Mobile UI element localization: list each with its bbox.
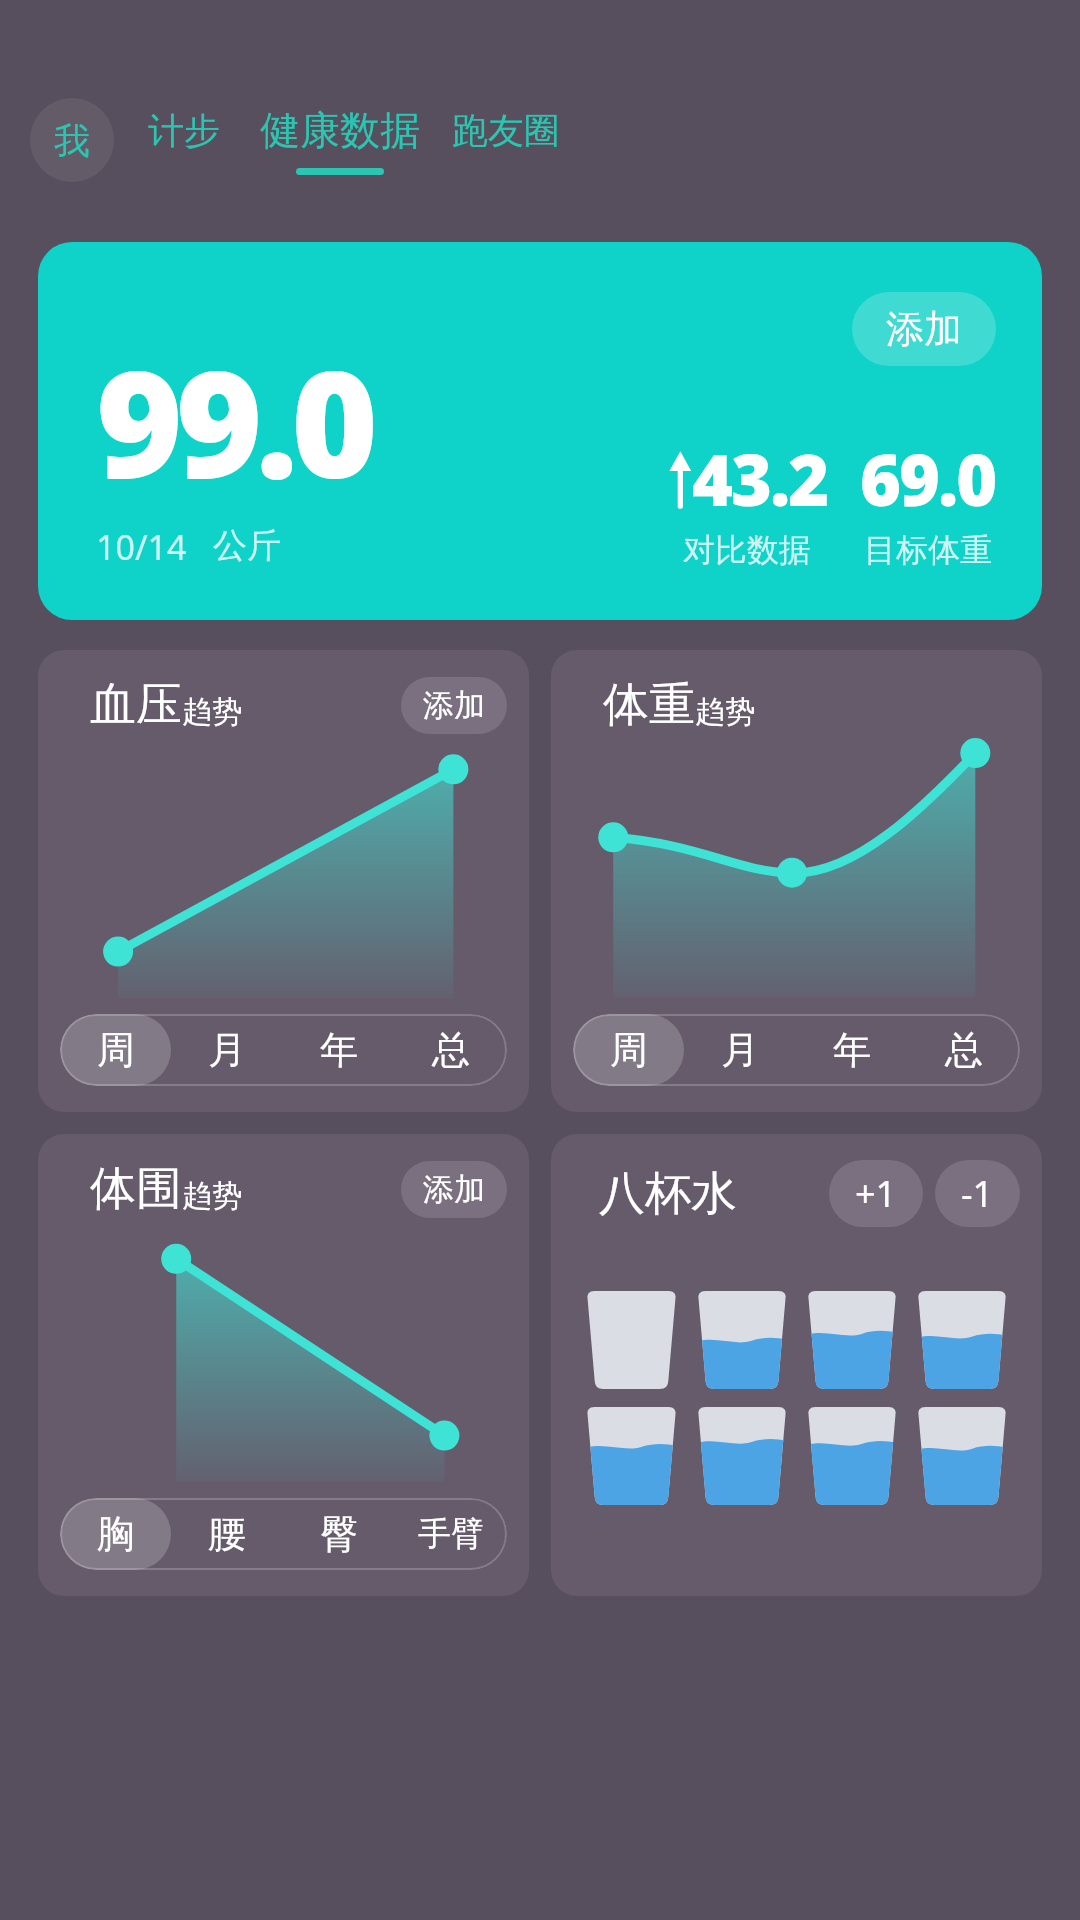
staticText: 体重 xyxy=(603,676,695,734)
button[interactable]: 年 xyxy=(283,1014,395,1086)
staticText: 体围 xyxy=(90,1160,182,1218)
button[interactable]: 周 xyxy=(60,1014,171,1086)
button[interactable]: Water glass xyxy=(804,1291,900,1389)
staticText: 43.2 xyxy=(692,431,828,526)
staticText: 我 xyxy=(54,118,90,163)
staticText: 血压 xyxy=(90,676,182,734)
button[interactable]: 体重 xyxy=(551,650,1042,1112)
staticText: 添加 xyxy=(423,1170,485,1209)
staticText: +1 xyxy=(855,1169,897,1218)
button[interactable]: 周 xyxy=(573,1014,684,1086)
staticText: 添加 xyxy=(886,305,962,353)
button[interactable]: Water glass xyxy=(914,1407,1010,1505)
button[interactable]: 臀 xyxy=(283,1498,395,1570)
button[interactable]: Water glass xyxy=(583,1291,680,1389)
button[interactable]: 腰 xyxy=(171,1498,283,1570)
button[interactable]: 总 xyxy=(395,1014,507,1086)
button[interactable]: -1 xyxy=(935,1160,1020,1227)
staticText: 跑友圈 xyxy=(452,108,560,153)
button[interactable]: 八杯水 xyxy=(551,1134,1042,1596)
staticText: 年 xyxy=(320,1026,358,1074)
staticText: 手臂 xyxy=(418,1513,484,1555)
staticText: 月 xyxy=(208,1026,246,1074)
staticText: 健康数据 xyxy=(260,105,420,155)
button[interactable]: Water glass xyxy=(914,1291,1010,1389)
button[interactable]: 添加 xyxy=(852,292,996,366)
staticText: 周 xyxy=(97,1026,135,1074)
button[interactable]: 添加 xyxy=(38,242,1042,620)
staticText: 八杯水 xyxy=(599,1165,737,1223)
button[interactable]: 血压 xyxy=(38,650,529,1112)
staticText: 对比数据 xyxy=(683,530,811,570)
staticText: 计步 xyxy=(148,108,220,153)
staticText: 目标体重 xyxy=(864,530,992,570)
staticText: 趋势 xyxy=(695,693,755,731)
staticText: 10/14 xyxy=(96,524,187,570)
button[interactable]: 计步 xyxy=(148,104,220,177)
button[interactable]: 体围 xyxy=(38,1134,529,1596)
button[interactable]: 月 xyxy=(684,1014,796,1086)
button[interactable]: 跑友圈 xyxy=(452,104,560,177)
button[interactable]: 添加 xyxy=(401,1161,507,1218)
button[interactable]: 胸 xyxy=(60,1498,171,1570)
staticText: 胸 xyxy=(97,1510,135,1558)
staticText: 腰 xyxy=(208,1510,246,1558)
staticText: 周 xyxy=(610,1026,648,1074)
staticText: 臀 xyxy=(320,1510,358,1558)
button[interactable]: 总 xyxy=(908,1014,1020,1086)
button[interactable]: +1 xyxy=(829,1160,923,1227)
staticText: 趋势 xyxy=(182,1177,242,1215)
staticText: -1 xyxy=(961,1169,994,1218)
staticText: 添加 xyxy=(423,686,485,725)
staticText: 公斤 xyxy=(213,524,281,567)
button[interactable]: Water glass xyxy=(694,1407,790,1505)
button[interactable]: 我 xyxy=(30,98,114,182)
staticText: 总 xyxy=(432,1026,470,1074)
staticText: 年 xyxy=(833,1026,871,1074)
staticText: 趋势 xyxy=(182,693,242,731)
button[interactable]: 年 xyxy=(796,1014,908,1086)
staticText: 月 xyxy=(721,1026,759,1074)
button[interactable]: Water glass xyxy=(804,1407,900,1505)
button[interactable]: 手臂 xyxy=(395,1498,507,1570)
button[interactable]: Water glass xyxy=(583,1407,680,1505)
button[interactable]: Water glass xyxy=(694,1291,790,1389)
staticText: 总 xyxy=(945,1026,983,1074)
button[interactable]: 健康数据 xyxy=(260,101,420,179)
staticText: 99.0 xyxy=(96,320,371,522)
staticText: 69.0 xyxy=(860,431,996,526)
button[interactable]: 月 xyxy=(171,1014,283,1086)
button[interactable]: 添加 xyxy=(401,677,507,734)
